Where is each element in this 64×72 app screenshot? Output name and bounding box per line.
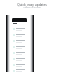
button[interactable] xyxy=(12,32,27,38)
button[interactable] xyxy=(12,62,27,68)
button[interactable] xyxy=(12,44,27,50)
button[interactable] xyxy=(12,56,27,62)
button[interactable] xyxy=(12,68,27,72)
staticText: Always up to date xyxy=(23,6,41,9)
button[interactable] xyxy=(12,26,27,32)
button[interactable] xyxy=(12,50,27,56)
button[interactable] xyxy=(12,38,27,44)
staticText: Quick, easy updates xyxy=(17,3,47,7)
